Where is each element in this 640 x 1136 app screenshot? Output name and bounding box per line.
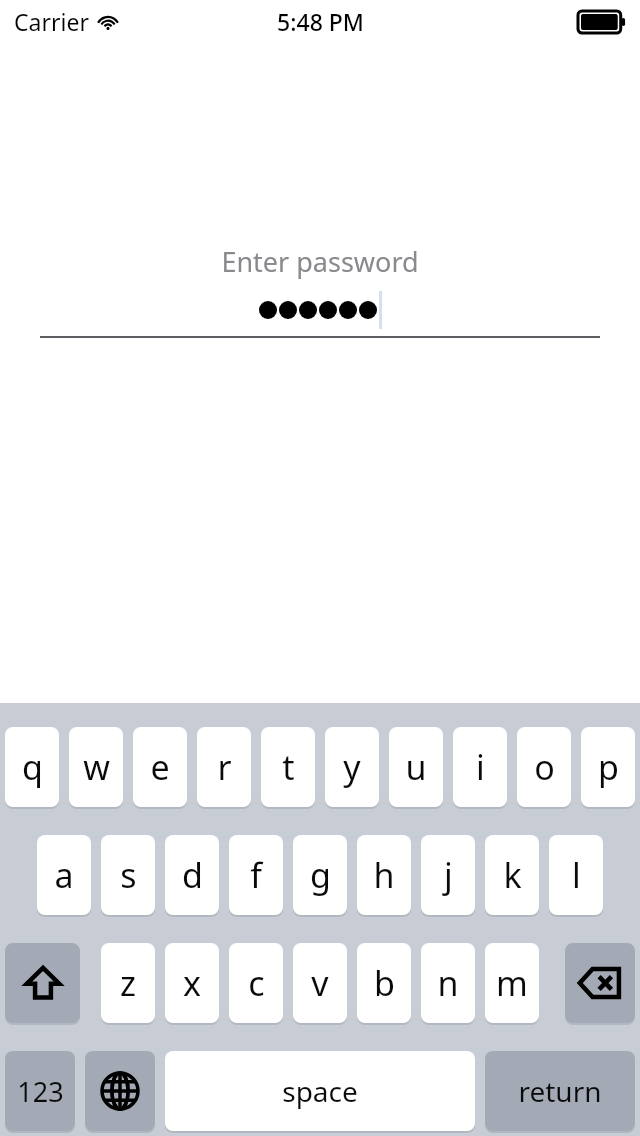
staticText: 123 [17,1073,64,1110]
button[interactable]: space [165,1051,475,1131]
button[interactable]: s [101,835,155,915]
button[interactable]: Switch keyboard [85,1051,155,1131]
button[interactable]: m [485,943,539,1023]
button[interactable] [40,288,600,332]
staticText: 5:48 PM [277,6,364,37]
staticText: Enter password [221,243,419,280]
staticText: l [572,852,581,898]
button[interactable]: p [581,727,635,807]
button[interactable]: x [165,943,219,1023]
button[interactable]: Shift [5,943,80,1023]
staticText: e [150,744,170,790]
button[interactable]: h [357,835,411,915]
button[interactable]: c [229,943,283,1023]
button[interactable]: v [293,943,347,1023]
staticText: i [476,744,485,790]
staticText: r [217,744,232,790]
staticText: o [534,744,555,790]
button[interactable]: 123 [5,1051,75,1131]
staticText: q [22,744,43,790]
button[interactable]: u [389,727,443,807]
button[interactable]: j [421,835,475,915]
staticText: n [437,960,459,1006]
staticText: m [496,960,528,1006]
staticText: d [182,852,203,898]
staticText: g [310,852,331,898]
button[interactable]: f [229,835,283,915]
button[interactable]: i [453,727,507,807]
staticText: k [503,852,522,898]
button[interactable]: z [101,943,155,1023]
staticText: y [343,744,361,790]
staticText: Carrier [14,6,89,37]
button[interactable]: t [261,727,315,807]
button[interactable]: b [357,943,411,1023]
staticText: w [83,744,110,790]
button[interactable]: o [517,727,571,807]
button[interactable]: y [325,727,379,807]
staticText: b [374,960,395,1006]
button[interactable]: n [421,943,475,1023]
button[interactable]: q [5,727,59,807]
staticText: f [250,852,262,898]
staticText: a [54,852,74,898]
button[interactable]: k [485,835,539,915]
staticText: z [120,960,136,1006]
staticText: t [282,744,295,790]
staticText: s [120,852,137,898]
button[interactable]: g [293,835,347,915]
button[interactable]: e [133,727,187,807]
staticText: u [405,744,427,790]
staticText: return [518,1072,602,1110]
button[interactable]: return [485,1051,635,1131]
staticText: space [282,1072,358,1110]
staticText: h [373,852,395,898]
button[interactable]: r [197,727,251,807]
staticText: v [311,960,329,1006]
staticText: x [183,960,201,1006]
button[interactable]: l [549,835,603,915]
staticText: j [444,852,453,898]
button[interactable]: Backspace [565,943,635,1023]
button[interactable]: a [37,835,91,915]
staticText: p [598,744,619,790]
button[interactable]: d [165,835,219,915]
button[interactable]: w [69,727,123,807]
staticText: c [248,960,265,1006]
